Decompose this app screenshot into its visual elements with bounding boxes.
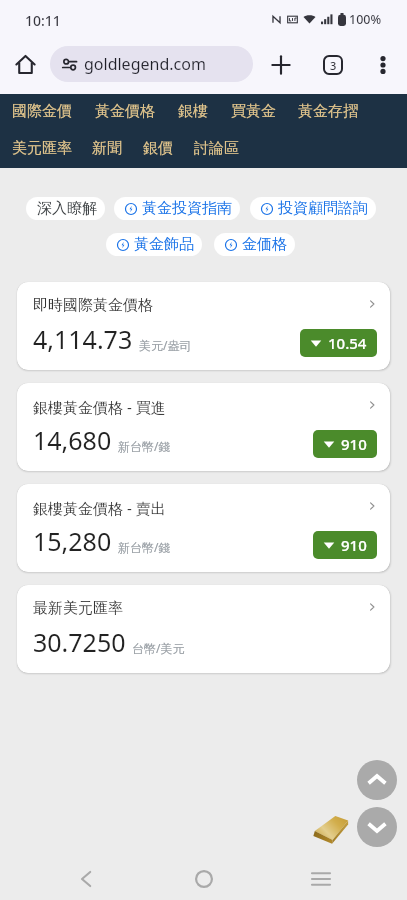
staticText: 3: [330, 58, 337, 73]
staticText: 14,680: [33, 423, 112, 457]
staticText: 4,114.73: [33, 322, 133, 356]
staticText: 30.7250: [33, 625, 126, 659]
staticText: 100%: [349, 11, 382, 28]
staticText: 15,280: [33, 524, 112, 558]
button[interactable]: More options: [364, 46, 401, 83]
button[interactable]: 銀樓黃金價格 - 買進: [17, 383, 390, 471]
button[interactable]: 910: [313, 531, 377, 559]
staticText: 深入瞭解: [37, 199, 97, 218]
staticText: 金価格: [242, 235, 287, 254]
staticText: 910: [341, 434, 367, 454]
staticText: 新台幣/錢: [118, 438, 171, 454]
button[interactable]: 深入瞭解: [26, 197, 105, 220]
button[interactable]: Home: [181, 856, 226, 900]
staticText: 投資顧問諮詢: [278, 199, 368, 218]
button[interactable]: New tab: [262, 46, 299, 83]
button[interactable]: 金価格: [214, 233, 295, 256]
button[interactable]: Tabs: [314, 46, 351, 83]
button[interactable]: 黃金飾品: [106, 233, 202, 256]
button[interactable]: 黃金價格: [95, 102, 155, 121]
button[interactable]: 910: [313, 430, 377, 458]
button[interactable]: 新聞: [92, 139, 122, 158]
staticText: 新台幣/錢: [118, 539, 171, 555]
staticText: 台幣/美元: [132, 640, 185, 656]
button[interactable]: 黃金投資指南: [114, 197, 240, 220]
button[interactable]: 投資顧問諮詢: [250, 197, 376, 220]
button[interactable]: 美元匯率: [12, 139, 72, 158]
staticText: 美元/盎司: [139, 337, 192, 353]
staticText: 即時國際黃金價格: [33, 296, 153, 315]
staticText: 910: [341, 535, 367, 555]
staticText: 銀樓黃金價格 - 賣出: [33, 498, 166, 518]
button[interactable]: 10.54: [300, 329, 377, 357]
button[interactable]: goldlegend.com: [50, 46, 253, 82]
button[interactable]: Back: [63, 856, 108, 900]
button[interactable]: Home: [7, 46, 43, 82]
staticText: 黃金投資指南: [142, 199, 232, 218]
button[interactable]: Recent apps: [298, 856, 343, 900]
button[interactable]: 銀樓: [178, 102, 208, 121]
button[interactable]: 買黃金: [231, 102, 276, 121]
button[interactable]: 最新美元匯率: [17, 585, 390, 673]
staticText: 銀樓黃金價格 - 買進: [33, 397, 166, 417]
button[interactable]: 銀價: [143, 139, 173, 158]
staticText: 10.54: [328, 333, 367, 353]
button[interactable]: Scroll to bottom: [357, 807, 397, 847]
staticText: 最新美元匯率: [33, 599, 123, 618]
button[interactable]: 黃金存摺: [298, 102, 358, 121]
button[interactable]: 銀樓黃金價格 - 賣出: [17, 484, 390, 572]
button[interactable]: 即時國際黃金價格: [17, 282, 390, 370]
staticText: 10:11: [25, 11, 61, 30]
staticText: goldlegend.com: [84, 53, 206, 75]
button[interactable]: Scroll to top: [357, 760, 397, 800]
staticText: 黃金飾品: [134, 235, 194, 254]
button[interactable]: 國際金價: [12, 102, 72, 121]
button[interactable]: 討論區: [194, 139, 239, 158]
